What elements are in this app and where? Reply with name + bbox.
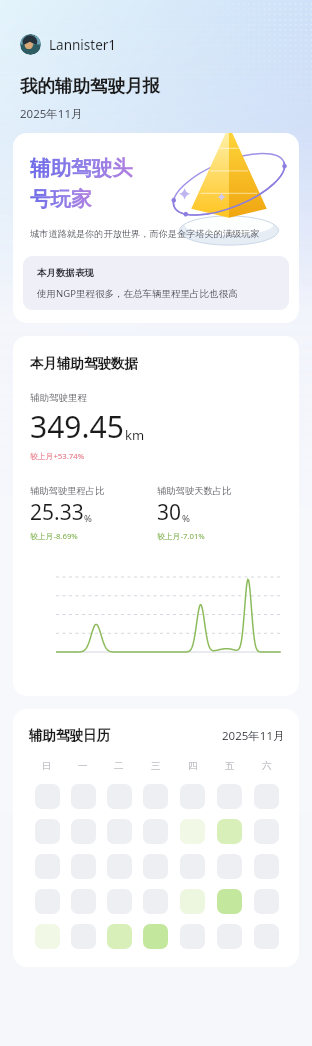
button[interactable]: Day	[143, 784, 168, 809]
button[interactable]: Day	[35, 784, 60, 809]
staticText: 五	[225, 760, 235, 772]
button[interactable]: Day	[107, 784, 132, 809]
button[interactable]: Lannister1	[20, 34, 117, 55]
staticText: 日	[42, 760, 52, 772]
button[interactable]: Day	[180, 784, 205, 809]
button[interactable]: Day	[217, 924, 242, 949]
button[interactable]: Day	[35, 889, 60, 914]
button[interactable]: Day	[71, 854, 96, 879]
button[interactable]: Day	[254, 889, 279, 914]
staticText: 2025年11月	[20, 106, 83, 122]
button[interactable]: Day	[35, 854, 60, 879]
button[interactable]: Day	[180, 854, 205, 879]
staticText: 我的辅助驾驶月报	[20, 75, 160, 97]
button[interactable]: Day	[107, 924, 132, 949]
button[interactable]: Day	[107, 819, 132, 844]
staticText: 辅助驾驶里程	[30, 392, 87, 404]
staticText: 较上月-7.01%	[157, 531, 205, 542]
button[interactable]: Day	[35, 819, 60, 844]
staticText: 辅助驾驶天数占比	[157, 485, 232, 497]
button[interactable]: 辅助驾驶天数占比	[157, 485, 285, 542]
button[interactable]: Day	[180, 924, 205, 949]
staticText: 本月辅助驾驶数据	[30, 355, 138, 372]
staticText: %	[84, 512, 92, 525]
staticText: 三	[151, 760, 161, 772]
button[interactable]: Day	[143, 889, 168, 914]
button[interactable]: Day	[217, 819, 242, 844]
button[interactable]: Day	[217, 854, 242, 879]
button[interactable]: Day	[254, 784, 279, 809]
staticText: 辅助驾驶日历	[29, 727, 110, 744]
button[interactable]: Day	[254, 854, 279, 879]
staticText: 较上月-8.69%	[30, 531, 78, 542]
button[interactable]: Day	[107, 854, 132, 879]
button[interactable]: Day	[217, 889, 242, 914]
staticText: 本月数据表现	[37, 267, 94, 279]
staticText: %	[182, 512, 190, 525]
button[interactable]: Day	[107, 889, 132, 914]
staticText: 30	[157, 498, 182, 527]
button[interactable]: Day	[180, 889, 205, 914]
button[interactable]: Day	[143, 819, 168, 844]
staticText: 六	[262, 760, 272, 772]
staticText: km	[125, 426, 145, 444]
button[interactable]: Day	[180, 819, 205, 844]
staticText: 349.45	[30, 406, 124, 447]
staticText: 四	[188, 760, 198, 772]
button[interactable]: Day	[71, 819, 96, 844]
button[interactable]: Day	[71, 784, 96, 809]
staticText: 二	[114, 760, 124, 772]
button[interactable]: 辅助驾驶日历	[13, 709, 299, 967]
button[interactable]: Day	[217, 784, 242, 809]
button[interactable]: 本月数据表现	[23, 256, 289, 310]
button[interactable]: 本月辅助驾驶数据	[13, 336, 299, 696]
button[interactable]: Day	[143, 924, 168, 949]
button[interactable]: 辅助驾驶头	[13, 133, 299, 323]
button[interactable]: Day	[254, 819, 279, 844]
button[interactable]: 辅助驾驶里程占比	[30, 485, 157, 542]
staticText: 号玩家	[30, 186, 92, 212]
staticText: 城市道路就是你的开放世界，而你是金字塔尖的满级玩家	[30, 228, 260, 240]
staticText: 辅助驾驶里程占比	[30, 485, 105, 497]
staticText: 较上月+53.74%	[30, 451, 85, 462]
staticText: Lannister1	[49, 36, 117, 54]
button[interactable]: Day	[71, 924, 96, 949]
staticText: 25.33	[30, 498, 84, 527]
button[interactable]: Day	[254, 924, 279, 949]
staticText: 一	[78, 760, 88, 772]
button[interactable]: Day	[143, 854, 168, 879]
staticText: 使用NGP里程很多，在总车辆里程里占比也很高	[37, 287, 238, 300]
staticText: 2025年11月	[222, 728, 285, 744]
button[interactable]: Day	[35, 924, 60, 949]
staticText: 辅助驾驶头	[30, 155, 133, 181]
button[interactable]: Day	[71, 889, 96, 914]
